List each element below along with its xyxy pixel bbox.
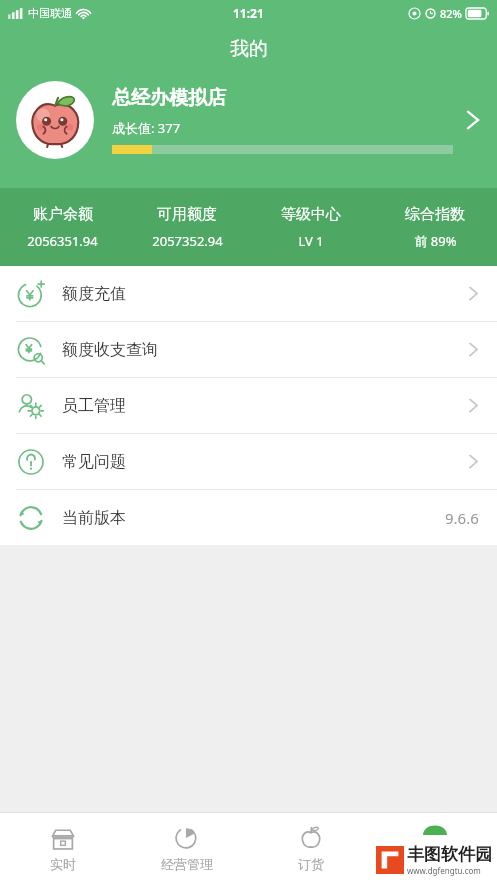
button[interactable]: 额度收支查询 — [0, 322, 497, 378]
staticText: 2056351.94 — [27, 232, 98, 250]
button[interactable]: 订货 — [249, 813, 373, 883]
staticText: 82% — [440, 6, 462, 21]
staticText: 中国联通 — [28, 6, 72, 20]
staticText: 9.6.6 — [445, 508, 479, 528]
staticText: 员工管理 — [62, 396, 468, 416]
button[interactable]: 额度充值 — [0, 266, 497, 322]
staticText: 2057352.94 — [152, 232, 223, 250]
button[interactable]: 账户余额 — [0, 188, 125, 266]
staticText: 额度充值 — [62, 284, 468, 304]
staticText: 11:21 — [233, 5, 264, 21]
staticText: 额度收支查询 — [62, 340, 468, 360]
staticText: 账户余额 — [33, 205, 93, 224]
button[interactable]: 我的 — [373, 813, 497, 883]
button[interactable]: 可用额度 — [125, 188, 249, 266]
staticText: 前 89% — [414, 232, 457, 250]
button[interactable]: 当前版本 — [0, 490, 497, 545]
button[interactable]: 员工管理 — [0, 378, 497, 434]
staticText: 等级中心 — [281, 205, 341, 224]
staticText: 常见问题 — [62, 452, 468, 472]
staticText: 综合指数 — [405, 205, 465, 224]
staticText: LV 1 — [298, 232, 324, 250]
button[interactable]: 经营管理 — [125, 813, 249, 883]
staticText: 订货 — [298, 856, 324, 872]
button[interactable]: 等级中心 — [249, 188, 373, 266]
staticText: 我的 — [230, 37, 268, 61]
staticText: 经营管理 — [161, 856, 213, 872]
staticText: 总经办模拟店 — [112, 86, 226, 110]
staticText: 成长值: 377 — [112, 119, 181, 137]
button[interactable]: 总经办模拟店 — [0, 72, 497, 168]
staticText: 当前版本 — [62, 508, 445, 528]
staticText: 可用额度 — [157, 205, 217, 224]
button[interactable]: 实时 — [0, 813, 125, 883]
staticText: 实时 — [50, 856, 76, 872]
staticText: 丰图软件园 — [407, 844, 492, 865]
staticText: www.dgfengtu.com — [407, 865, 481, 876]
button[interactable]: 常见问题 — [0, 434, 497, 490]
button[interactable]: 综合指数 — [373, 188, 497, 266]
